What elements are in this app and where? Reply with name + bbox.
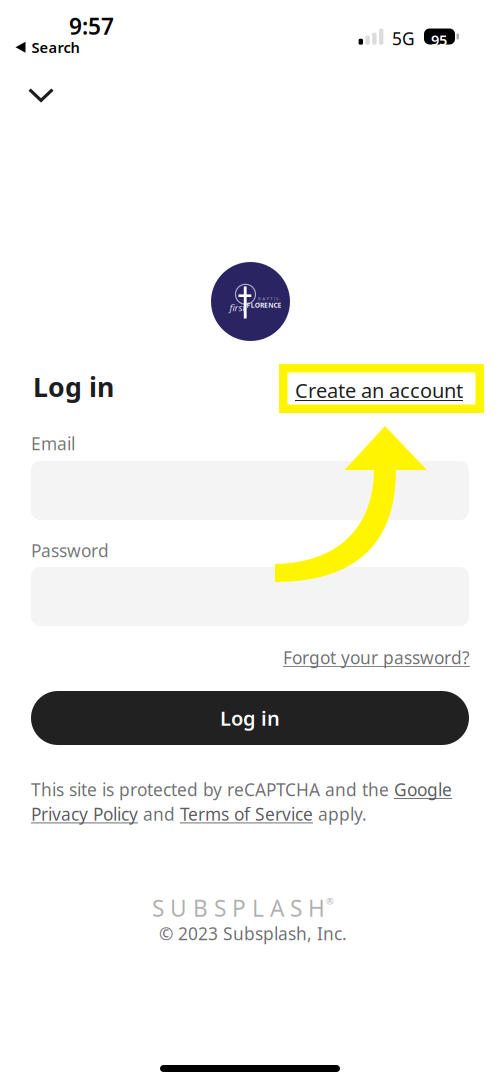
staticText: and [138, 802, 180, 825]
staticText: Log in [33, 369, 114, 404]
button[interactable]: Privacy Policy [31, 802, 138, 825]
staticText: Search [31, 37, 79, 57]
staticText: apply. [313, 802, 367, 825]
button[interactable]: Google [394, 778, 452, 801]
button[interactable]: Create an account [279, 364, 484, 413]
staticText: Password [31, 539, 109, 562]
staticText: Privacy Policy [31, 802, 138, 825]
staticText: Email [31, 432, 75, 455]
button[interactable]: Search [15, 37, 79, 57]
button[interactable]: Close [15, 75, 67, 115]
staticText: 9:57 [69, 11, 114, 41]
staticText: Create an account [295, 377, 463, 404]
staticText: Log in [220, 705, 280, 731]
staticText: This site is protected by reCAPTCHA and … [31, 778, 394, 801]
staticText: BAPTIST [258, 296, 281, 301]
staticText: ® [326, 895, 334, 907]
staticText: © 2023 Subsplash, Inc. [159, 922, 347, 945]
staticText: Terms of Service [180, 802, 313, 825]
staticText: Forgot your password? [283, 646, 470, 669]
staticText: FLORENCE [246, 301, 282, 310]
staticText: 5G [392, 27, 415, 50]
staticText: SUBSPLASH [152, 893, 325, 923]
staticText: 95 [431, 30, 447, 49]
button[interactable]: Terms of Service [180, 802, 313, 825]
staticText: first [229, 301, 245, 314]
button[interactable]: Forgot your password? [283, 646, 470, 669]
staticText: Google [394, 778, 452, 801]
button[interactable]: Log in [31, 691, 469, 745]
